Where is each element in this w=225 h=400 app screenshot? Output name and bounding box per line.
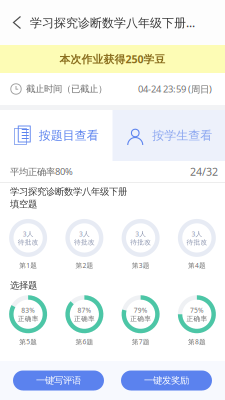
staticText: 第6题	[75, 337, 93, 346]
staticText: 3人	[191, 229, 202, 238]
button[interactable]: 3人	[112, 219, 169, 270]
staticText: 3人	[135, 229, 146, 238]
staticText: 本次作业获得250学豆	[59, 52, 165, 66]
staticText: 填空题	[10, 198, 37, 210]
staticText: 第4题	[188, 261, 206, 270]
button[interactable]: 按题目查看	[0, 110, 112, 161]
staticText: 平均正确率80%	[10, 165, 73, 178]
staticText: 第8题	[188, 337, 206, 346]
staticText: 一键发奖励	[144, 375, 189, 386]
staticText: 79%	[134, 306, 148, 315]
button[interactable]: 3人	[169, 219, 225, 270]
staticText: 待批改	[186, 238, 207, 246]
button[interactable]: 3人	[56, 219, 112, 270]
button[interactable]: 79%	[112, 295, 169, 346]
staticText: 按学生查看	[152, 128, 212, 143]
staticText: 待批改	[18, 238, 39, 246]
staticText: 87%	[77, 306, 91, 315]
staticText: 学习探究诊断数学八年级下册...	[30, 14, 195, 30]
button[interactable]: 87%	[56, 295, 112, 346]
button[interactable]: 83%	[0, 295, 56, 346]
staticText: 正确率	[130, 315, 151, 323]
staticText: 3人	[79, 229, 90, 238]
staticText: 第7题	[132, 337, 150, 346]
staticText: 24/32	[190, 164, 218, 179]
staticText: 选择题	[10, 280, 37, 291]
staticText: 截止时间（已截止）	[26, 83, 107, 95]
staticText: 待批改	[130, 238, 151, 246]
staticText: 第2题	[75, 261, 93, 270]
button[interactable]: 一键发奖励	[121, 370, 212, 390]
staticText: 一键写评语	[36, 375, 81, 386]
staticText: 3人	[23, 229, 34, 238]
staticText: 75%	[190, 306, 204, 315]
button[interactable]: Back	[5, 4, 30, 40]
staticText: 04-24 23:59 (周日)	[138, 83, 212, 95]
staticText: 正确率	[18, 315, 39, 323]
staticText: 正确率	[186, 315, 207, 323]
staticText: 正确率	[74, 315, 95, 323]
staticText: 第5题	[19, 337, 37, 346]
button[interactable]: 按学生查看	[112, 110, 225, 161]
staticText: 待批改	[74, 238, 95, 246]
button[interactable]: 3人	[0, 219, 56, 270]
button[interactable]: 一键写评语	[13, 370, 104, 390]
staticText: 83%	[21, 306, 35, 315]
staticText: 学习探究诊断数学八年级下册	[10, 186, 127, 197]
button[interactable]: 75%	[169, 295, 225, 346]
staticText: 按题目查看	[39, 128, 99, 143]
staticText: 第1题	[19, 261, 37, 270]
staticText: 第3题	[132, 261, 150, 270]
